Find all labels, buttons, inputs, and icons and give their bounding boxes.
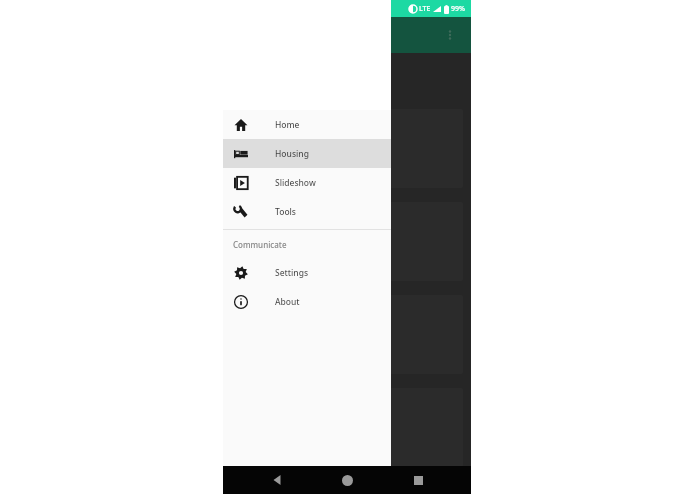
staticText: About [275,296,300,308]
button[interactable]: More options [435,20,465,50]
button[interactable]: Slideshow [223,168,391,197]
staticText: Tools [275,206,296,218]
button[interactable]: Tools [223,197,391,226]
staticText: Settings [275,267,309,279]
button[interactable]: Housing [223,139,391,168]
button[interactable] [231,295,463,374]
staticText: LTE [419,4,431,14]
staticText: Home [275,119,300,131]
button[interactable]: Settings [223,258,391,287]
button[interactable]: Home [330,466,364,494]
button[interactable] [231,388,463,467]
button[interactable]: Home [223,110,391,139]
staticText: 99% [451,4,465,14]
button[interactable]: About [223,287,391,316]
button[interactable] [231,202,463,281]
staticText: Communicate [233,239,287,250]
button[interactable]: Recent apps [401,466,435,494]
staticText: Housing [275,148,309,160]
staticText: Slideshow [275,177,316,189]
button[interactable]: Back [260,466,294,494]
button[interactable] [231,109,463,188]
